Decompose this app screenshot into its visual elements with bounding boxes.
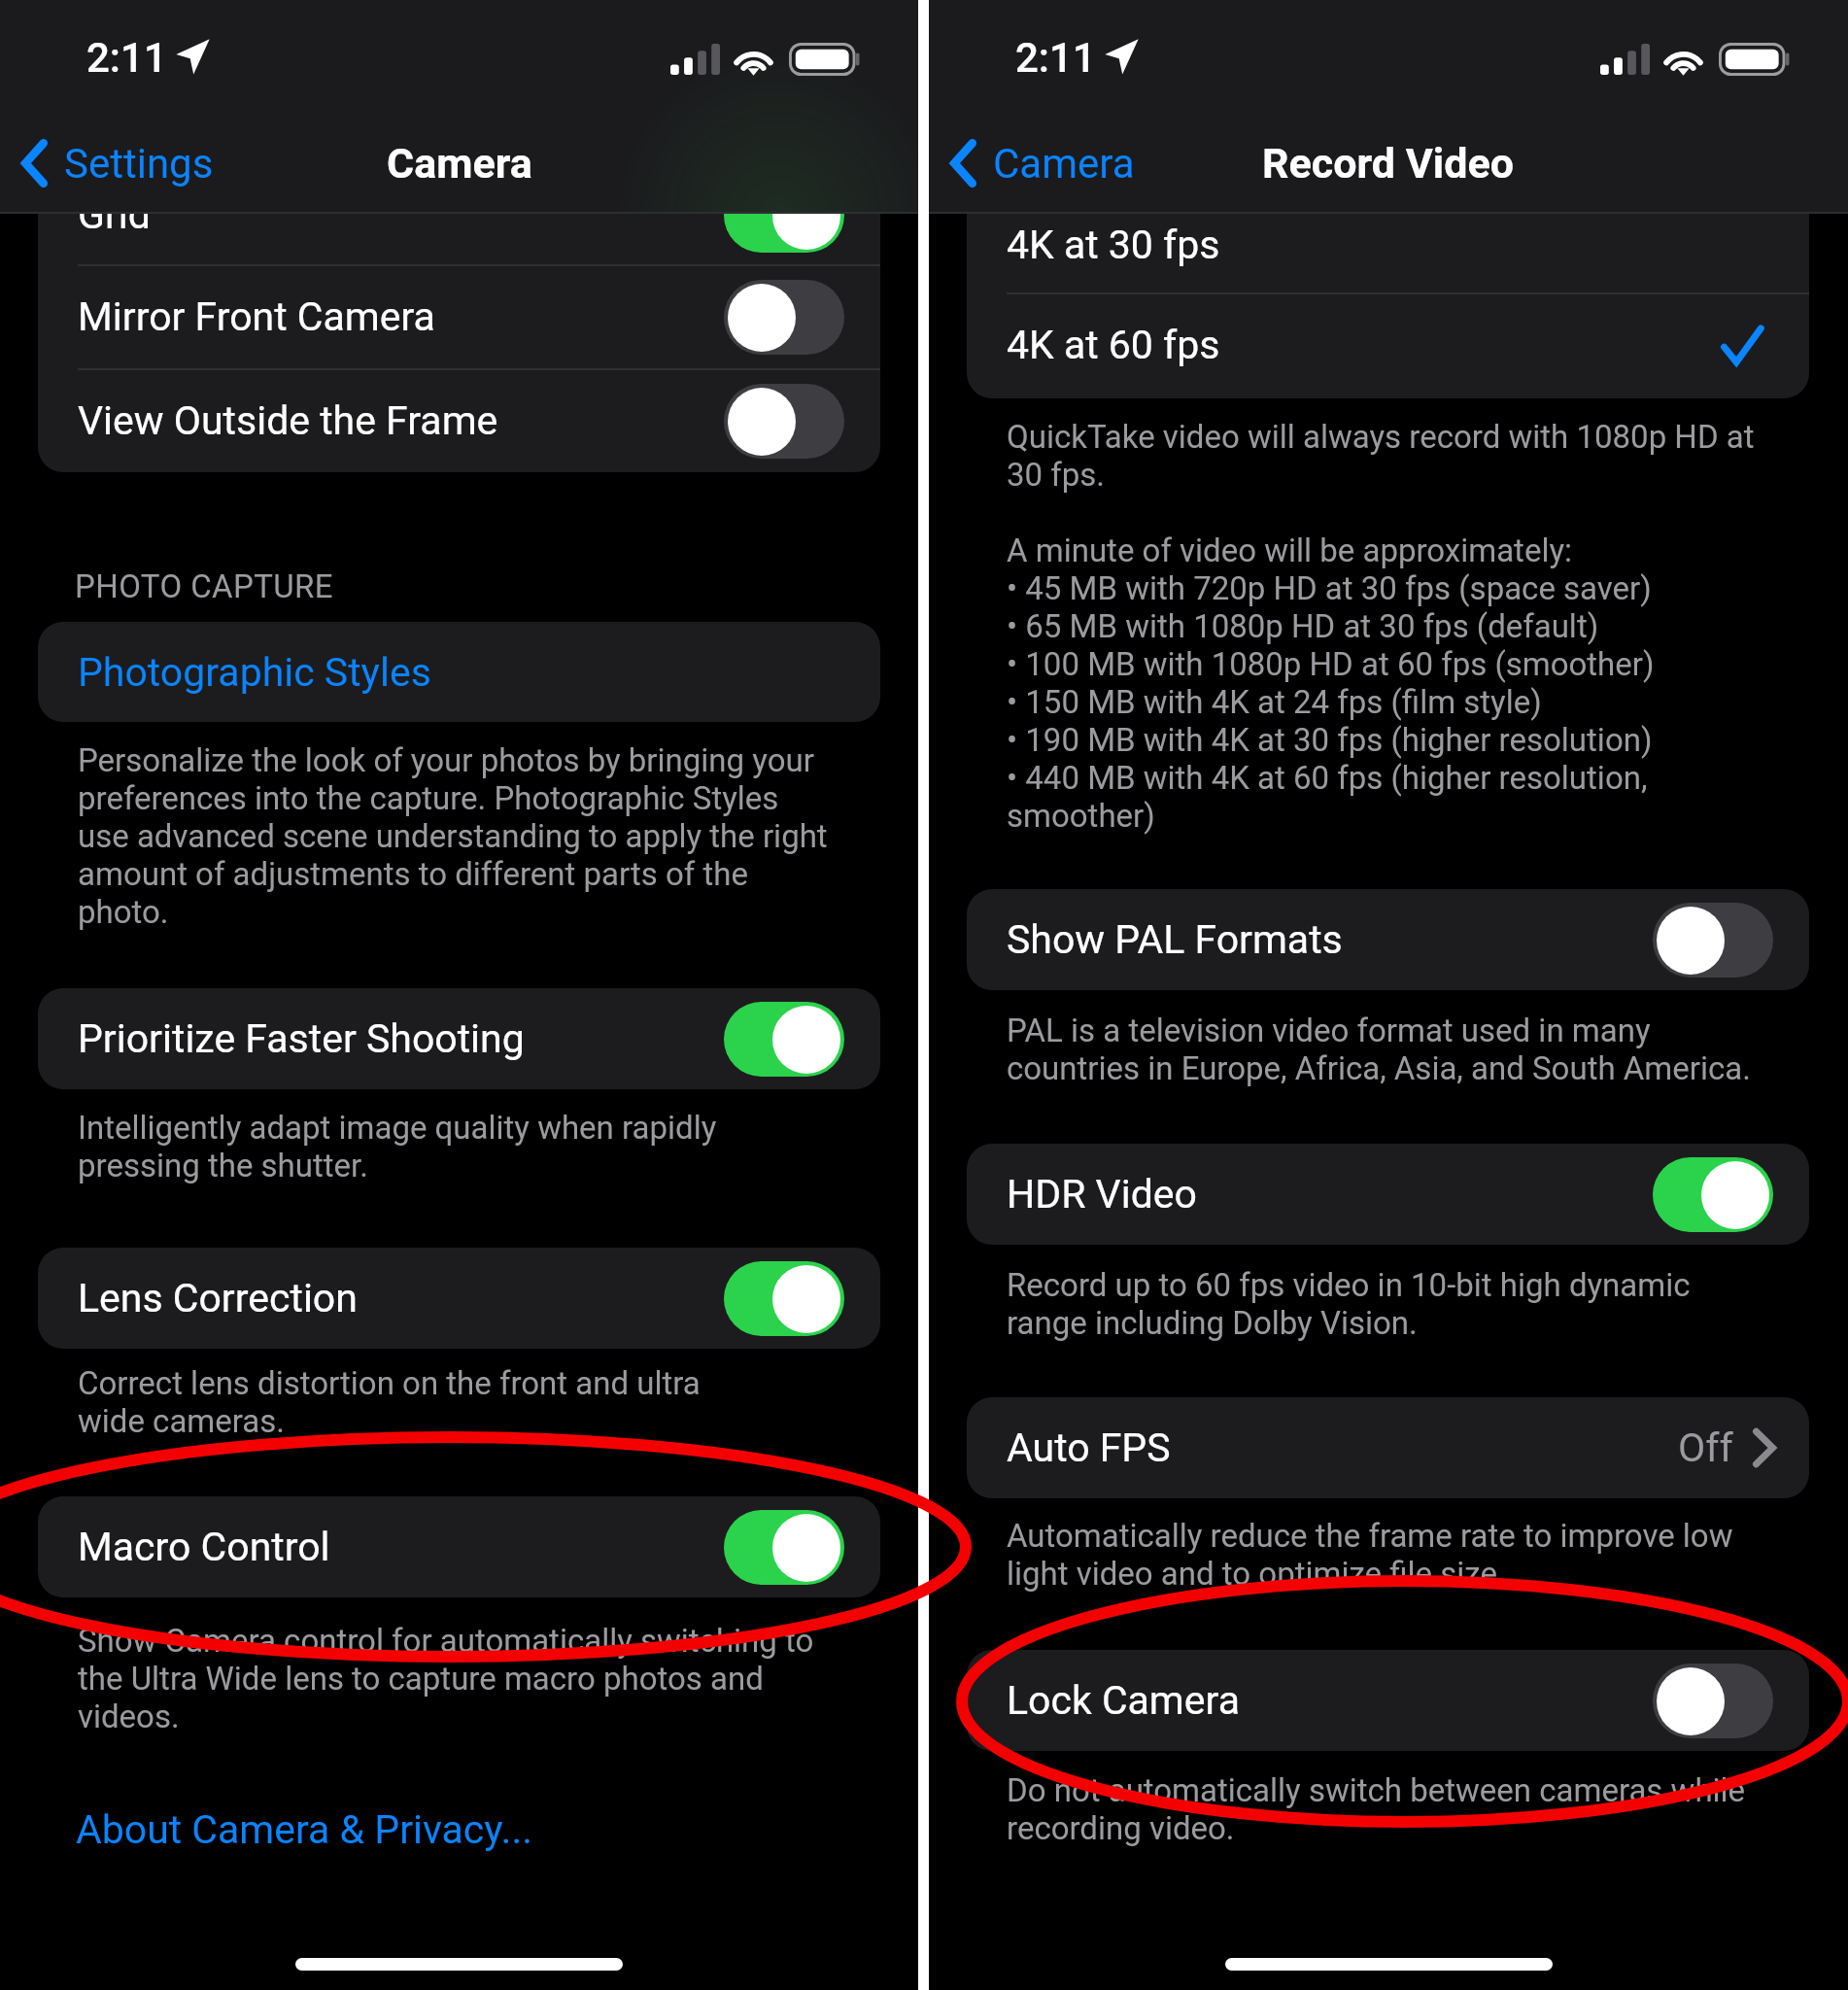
staticText: View Outside the Frame bbox=[78, 397, 498, 444]
staticText: Macro Control bbox=[78, 1524, 330, 1570]
staticText: Personalize the look of your photos by b… bbox=[78, 741, 834, 931]
button[interactable]: Toggle off bbox=[1653, 903, 1773, 978]
staticText: 4K at 30 fps bbox=[1007, 222, 1220, 268]
button[interactable]: Toggle off bbox=[724, 384, 844, 459]
button[interactable]: Toggle off bbox=[1653, 1664, 1773, 1738]
staticText: Do not automatically switch between came… bbox=[1007, 1771, 1762, 1847]
staticText: Record up to 60 fps video in 10-bit high… bbox=[1007, 1266, 1762, 1342]
button[interactable]: Mirror Front Camera bbox=[38, 265, 880, 368]
button[interactable]: Toggle on bbox=[724, 178, 844, 253]
button[interactable]: Toggle on bbox=[724, 1002, 844, 1077]
button[interactable]: Show PAL Formats bbox=[967, 889, 1809, 990]
staticText: PHOTO CAPTURE bbox=[75, 567, 333, 605]
button[interactable]: Toggle on bbox=[1653, 1157, 1773, 1232]
staticText: Mirror Front Camera bbox=[78, 293, 435, 340]
staticText: Lens Correction bbox=[78, 1275, 358, 1321]
staticText: QuickTake video will always record with … bbox=[1007, 418, 1774, 835]
staticText: PAL is a television video format used in… bbox=[1007, 1012, 1762, 1087]
staticText: Camera bbox=[993, 140, 1135, 188]
staticText: Prioritize Faster Shooting bbox=[78, 1015, 525, 1062]
button[interactable]: 4K at 30 fps bbox=[967, 196, 1809, 292]
button[interactable]: About Camera & Privacy... bbox=[76, 1806, 532, 1853]
staticText: Show Camera control for automatically sw… bbox=[78, 1622, 834, 1735]
button[interactable]: Prioritize Faster Shooting bbox=[38, 988, 880, 1089]
staticText: Photographic Styles bbox=[78, 649, 431, 696]
button[interactable]: HDR Video bbox=[967, 1144, 1809, 1245]
staticText: Off bbox=[1678, 1424, 1733, 1471]
button[interactable]: 4K at 60 fps bbox=[967, 293, 1809, 396]
staticText: Correct lens distortion on the front and… bbox=[78, 1364, 758, 1440]
staticText: 2:11 bbox=[1015, 34, 1096, 82]
staticText: Intelligently adapt image quality when r… bbox=[78, 1109, 834, 1184]
button[interactable]: Back to Settings bbox=[21, 118, 214, 207]
staticText: 4K at 60 fps bbox=[1007, 322, 1220, 368]
button[interactable]: Grid bbox=[38, 165, 880, 264]
button[interactable]: Photographic Styles bbox=[38, 622, 880, 722]
staticText: 2:11 bbox=[86, 34, 167, 82]
staticText: Grid bbox=[78, 191, 151, 238]
button[interactable]: Auto FPS bbox=[967, 1397, 1809, 1498]
button[interactable]: Macro Control bbox=[38, 1496, 880, 1597]
staticText: Automatically reduce the frame rate to i… bbox=[1007, 1517, 1762, 1593]
staticText: Settings bbox=[64, 140, 214, 188]
button[interactable]: View Outside the Frame bbox=[38, 369, 880, 472]
staticText: Show PAL Formats bbox=[1007, 916, 1343, 963]
other: Selected bbox=[1722, 326, 1762, 365]
button[interactable]: Toggle on bbox=[724, 1510, 844, 1585]
button[interactable]: Back to Camera bbox=[950, 118, 1135, 207]
button[interactable]: Toggle on bbox=[724, 1261, 844, 1336]
staticText: Camera bbox=[387, 139, 532, 188]
staticText: Record Video bbox=[1262, 139, 1515, 188]
button[interactable]: Toggle off bbox=[724, 280, 844, 355]
staticText: Lock Camera bbox=[1007, 1677, 1240, 1724]
button[interactable]: Lens Correction bbox=[38, 1248, 880, 1349]
staticText: HDR Video bbox=[1007, 1171, 1197, 1218]
staticText: Auto FPS bbox=[1007, 1424, 1171, 1471]
button[interactable]: Lock Camera bbox=[967, 1650, 1809, 1751]
